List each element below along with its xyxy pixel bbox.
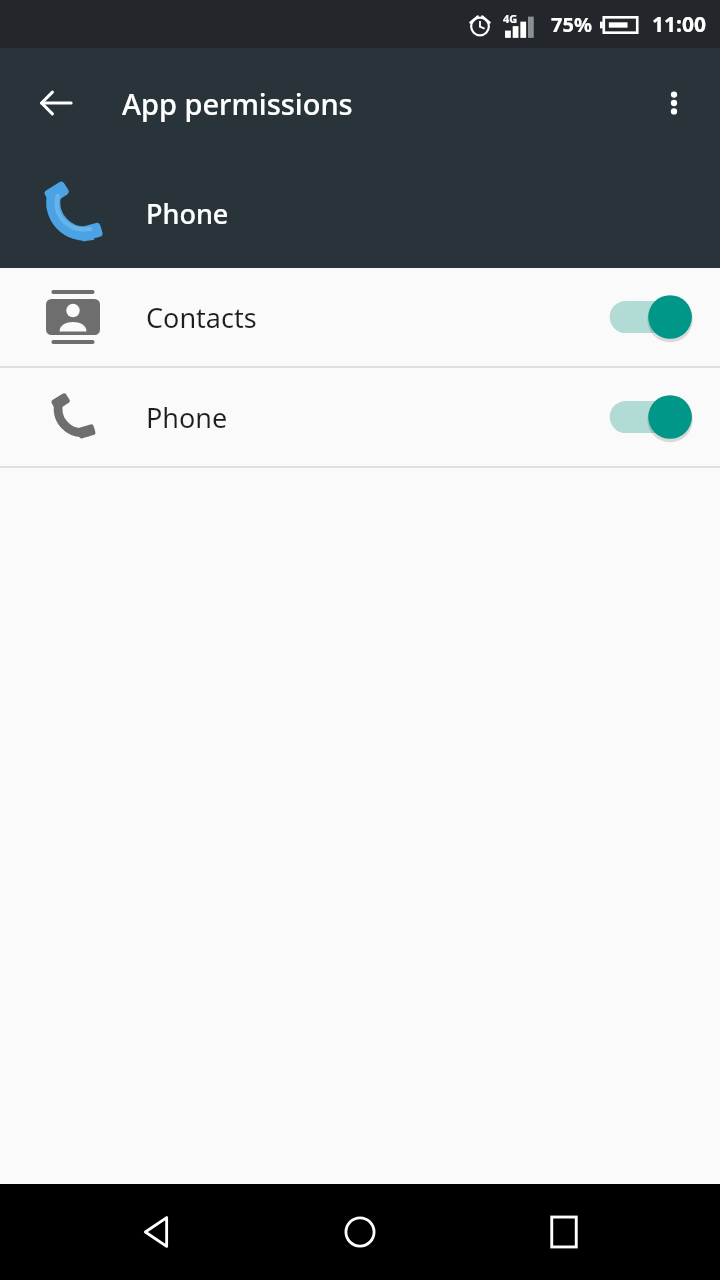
staticText: Phone [146,399,608,436]
button[interactable]: Phone [0,158,720,268]
button[interactable]: More options [646,75,702,131]
button[interactable]: Home [312,1184,408,1280]
staticText: 4G [503,11,518,26]
staticText: App permissions [122,84,353,123]
button[interactable]: Phone permission toggle [608,388,694,446]
staticText: Contacts [146,299,608,336]
button[interactable]: Contacts [0,268,720,366]
button[interactable]: Back [26,73,86,133]
button[interactable]: Phone [0,368,720,466]
staticText: 11:00 [652,10,706,39]
button[interactable]: Back [108,1184,204,1280]
button[interactable]: Recent apps [516,1184,612,1280]
button[interactable]: Contacts permission toggle [608,288,694,346]
staticText: 75% [551,11,592,38]
staticText: Phone [146,195,229,232]
